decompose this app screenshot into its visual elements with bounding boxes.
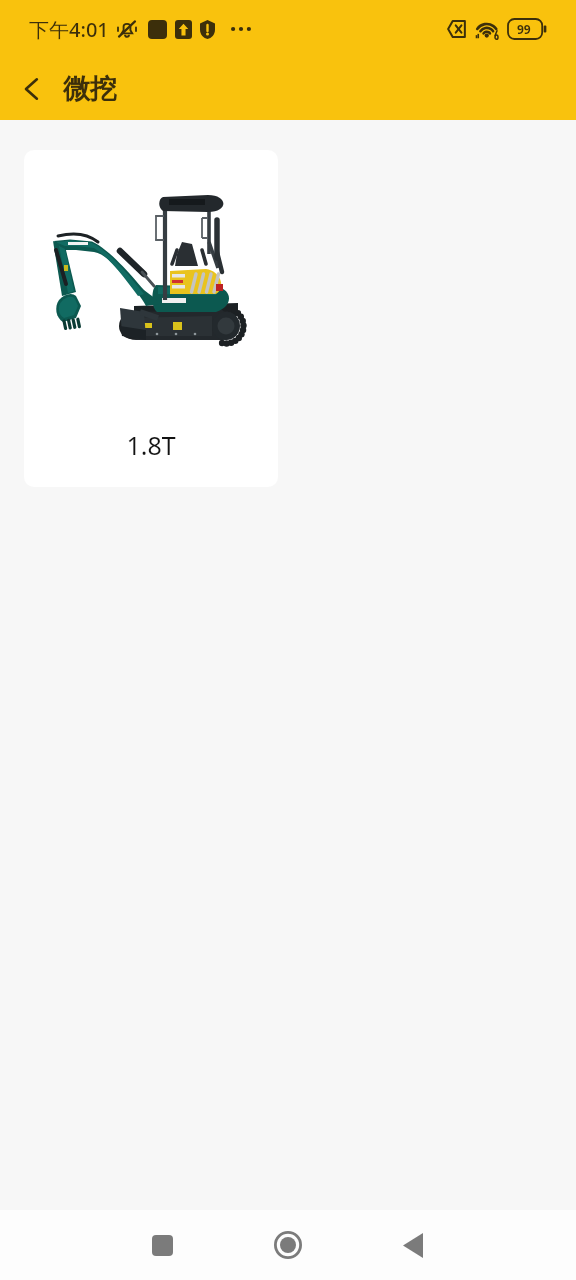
button[interactable]: 1.8T: [24, 150, 278, 487]
button[interactable]: Back: [363, 1210, 463, 1280]
staticText: 1.8T: [24, 428, 278, 462]
button[interactable]: Home: [238, 1210, 338, 1280]
button[interactable]: Recents: [112, 1210, 212, 1280]
staticText: 99: [517, 21, 531, 37]
staticText: 下午4:01: [29, 16, 109, 43]
staticText: 微挖: [63, 72, 117, 106]
button[interactable]: Back: [0, 58, 62, 120]
